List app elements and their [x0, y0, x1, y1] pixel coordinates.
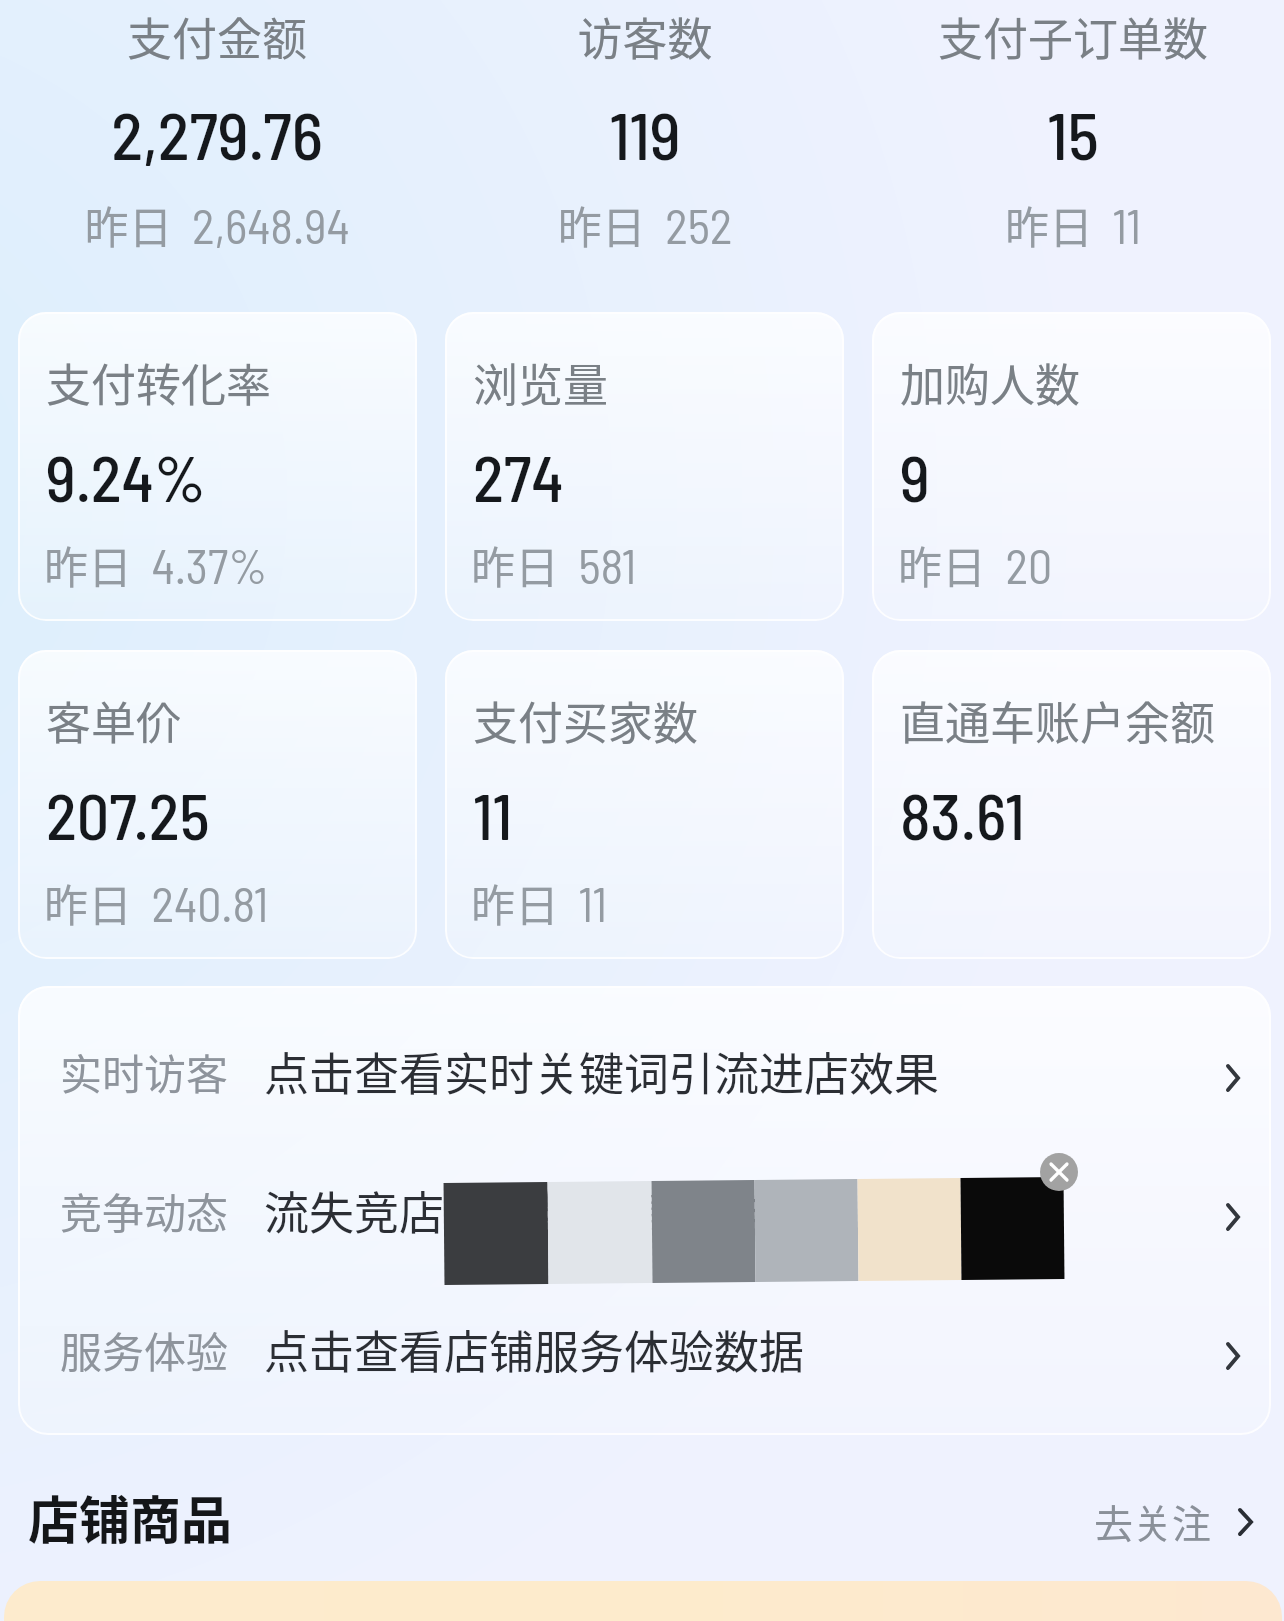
- button[interactable]: 去关注: [1080, 1470, 1270, 1570]
- staticText: 去关注: [1094, 1493, 1212, 1549]
- staticText: 119: [431, 94, 859, 173]
- staticText: 服务体验: [60, 1319, 229, 1380]
- button[interactable]: 竞争动态: [18, 1133, 1271, 1272]
- button[interactable]: 直通车账户余额: [872, 650, 1271, 959]
- button[interactable]: 支付买家数: [445, 650, 844, 959]
- staticText: 9.24%: [46, 438, 206, 515]
- staticText: 浏览量: [473, 350, 609, 415]
- staticText: 支付买家数: [473, 688, 699, 753]
- staticText: 竞争动态: [60, 1180, 229, 1241]
- staticText: 访客数: [431, 4, 859, 69]
- button[interactable]: 支付金额: [3, 0, 431, 270]
- staticText: 支付转化率: [46, 350, 272, 415]
- button[interactable]: 支付转化率: [18, 312, 417, 621]
- staticText: 流失竞店分析与关键动作提醒: [264, 1178, 850, 1243]
- button[interactable]: 实时访客: [18, 994, 1271, 1133]
- staticText: 昨日 240.81: [44, 871, 269, 935]
- button[interactable]: 服务体验: [18, 1272, 1271, 1411]
- staticText: 店铺商品: [28, 1480, 233, 1554]
- staticText: 加购人数: [900, 350, 1081, 415]
- staticText: 83.61: [900, 776, 1025, 853]
- staticText: 昨日 20: [898, 533, 1053, 597]
- staticText: 昨日 4.37%: [44, 533, 268, 597]
- staticText: 客单价: [46, 688, 182, 753]
- button[interactable]: [4, 1581, 1282, 1621]
- staticText: 昨日 252: [431, 193, 859, 257]
- staticText: 支付子订单数: [859, 4, 1284, 69]
- staticText: 207.25: [46, 776, 210, 853]
- button[interactable]: Close advertisement: [1040, 1153, 1078, 1191]
- button[interactable]: 客单价: [18, 650, 417, 959]
- staticText: 点击查看实时关键词引流进店效果: [264, 1039, 940, 1104]
- staticText: 支付金额: [3, 4, 431, 69]
- staticText: 9: [900, 438, 930, 515]
- staticText: 11: [473, 776, 513, 853]
- button[interactable]: 支付子订单数: [859, 0, 1284, 270]
- staticText: 昨日 11: [471, 871, 608, 935]
- staticText: 点击查看店铺服务体验数据: [264, 1317, 805, 1382]
- staticText: 2,279.76: [3, 94, 431, 173]
- staticText: 昨日 11: [859, 193, 1284, 257]
- button[interactable]: 访客数: [431, 0, 859, 270]
- staticText: 昨日 581: [471, 533, 637, 597]
- button[interactable]: 加购人数: [872, 312, 1271, 621]
- staticText: 15: [859, 94, 1284, 173]
- staticText: 274: [473, 438, 564, 515]
- staticText: 实时访客: [60, 1041, 229, 1102]
- staticText: 昨日 2,648.94: [3, 193, 431, 257]
- button[interactable]: 浏览量: [445, 312, 844, 621]
- staticText: 直通车账户余额: [900, 688, 1216, 753]
